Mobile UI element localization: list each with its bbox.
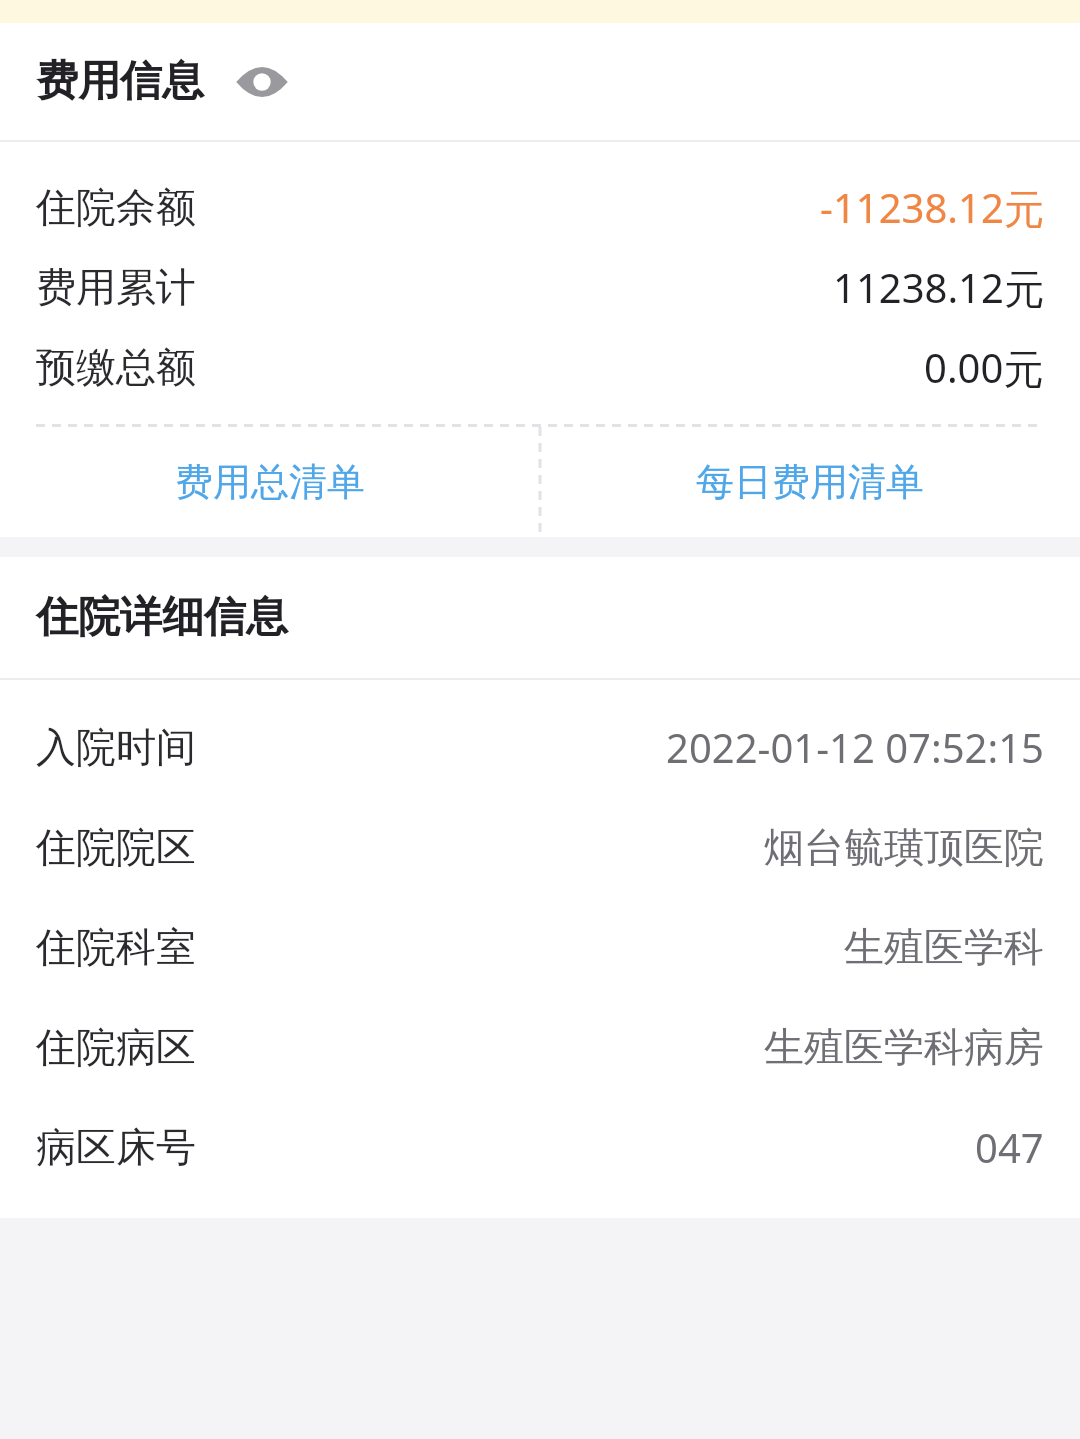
staticText: 烟台毓璜顶医院 — [764, 822, 1044, 872]
staticText: 11238.12元 — [833, 260, 1044, 314]
staticText: 住院余额 — [36, 182, 196, 232]
staticText: 生殖医学科 — [844, 922, 1044, 972]
button[interactable]: 费用总清单 — [0, 427, 540, 537]
staticText: 预缴总额 — [36, 342, 196, 392]
button[interactable]: 每日费用清单 — [540, 427, 1080, 537]
staticText: 住院院区 — [36, 822, 196, 872]
staticText: 住院科室 — [36, 922, 196, 972]
staticText: 费用累计 — [36, 262, 196, 312]
staticText: 住院详细信息 — [36, 591, 288, 644]
staticText: 住院病区 — [36, 1022, 196, 1072]
staticText: 047 — [975, 1120, 1044, 1174]
staticText: 病区床号 — [36, 1122, 196, 1172]
staticText: 费用信息 — [36, 55, 204, 108]
button[interactable]: Toggle amount visibility — [234, 54, 290, 110]
staticText: 生殖医学科病房 — [764, 1022, 1044, 1072]
staticText: 0.00元 — [924, 340, 1044, 394]
staticText: 2022-01-12 07:52:15 — [666, 720, 1044, 774]
staticText: 每日费用清单 — [696, 458, 924, 506]
staticText: 费用总清单 — [175, 458, 365, 506]
staticText: -11238.12元 — [820, 180, 1044, 234]
staticText: 入院时间 — [36, 722, 196, 772]
